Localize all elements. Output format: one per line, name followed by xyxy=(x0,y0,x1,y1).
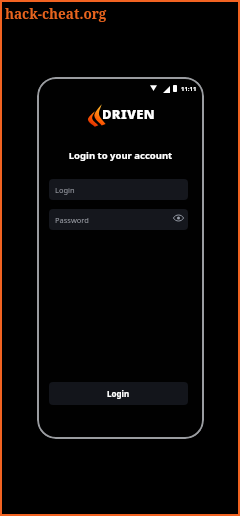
staticText: 11:11 xyxy=(181,85,197,93)
button[interactable]: Password xyxy=(49,209,188,230)
button[interactable]: Login xyxy=(49,179,188,200)
staticText: Login xyxy=(55,185,75,195)
staticText: Login to your account xyxy=(37,149,204,162)
staticText: DRIVEN xyxy=(102,105,155,123)
button[interactable]: Show password xyxy=(173,214,184,222)
staticText: hack-cheat.org xyxy=(5,5,107,23)
staticText: Login xyxy=(107,388,130,399)
button[interactable]: Login xyxy=(49,382,188,405)
staticText: Password xyxy=(55,215,89,225)
